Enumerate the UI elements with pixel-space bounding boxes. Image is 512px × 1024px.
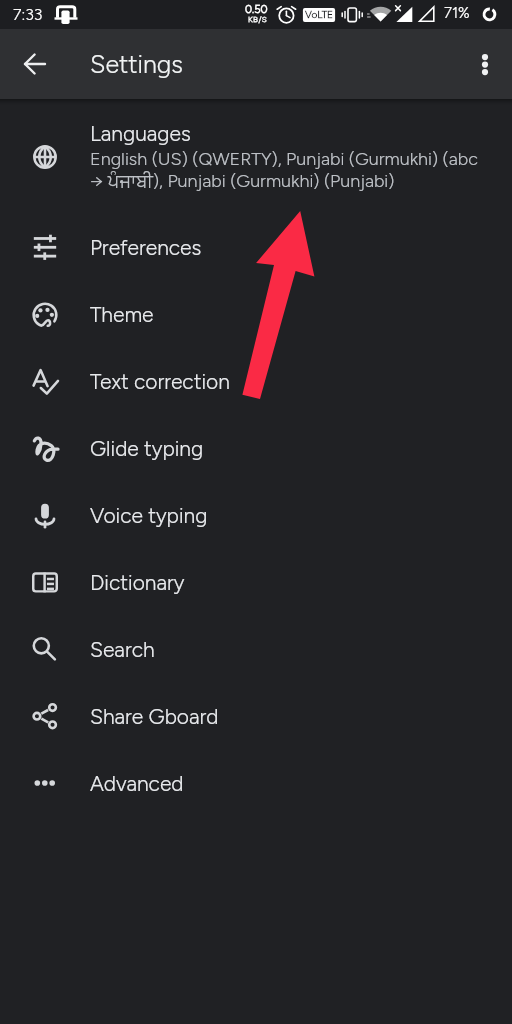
staticText: 71% [444, 4, 470, 22]
staticText: 0.50 [245, 3, 268, 16]
staticText: Voice typing [90, 503, 208, 528]
staticText: 7:33 [13, 5, 43, 24]
staticText: Languages [90, 121, 191, 146]
staticText: Settings [90, 49, 183, 79]
staticText: English (US) (QWERTY), Punjabi (Gurmukhi… [90, 148, 480, 192]
button[interactable]: Theme [0, 281, 512, 348]
button[interactable]: Share Gboard [0, 683, 512, 750]
button[interactable]: Search [0, 616, 512, 683]
staticText: Search [90, 637, 155, 662]
staticText: Text correction [90, 369, 230, 394]
staticText: KB/S [248, 14, 268, 24]
button[interactable]: Back [11, 40, 59, 88]
button[interactable]: Text correction [0, 348, 512, 415]
staticText: Theme [90, 302, 154, 327]
staticText: Advanced [90, 771, 184, 796]
staticText: VoLTE [305, 8, 333, 20]
button[interactable]: Glide typing [0, 415, 512, 482]
staticText: Share Gboard [90, 704, 219, 729]
staticText: Dictionary [90, 570, 185, 595]
button[interactable]: Advanced [0, 750, 512, 817]
button[interactable]: Dictionary [0, 549, 512, 616]
staticText: Glide typing [90, 436, 204, 461]
button[interactable]: Voice typing [0, 482, 512, 549]
staticText: Preferences [90, 235, 202, 260]
button[interactable]: Preferences [0, 214, 512, 281]
button[interactable]: Languages [0, 99, 512, 214]
button[interactable]: More options [463, 42, 507, 86]
